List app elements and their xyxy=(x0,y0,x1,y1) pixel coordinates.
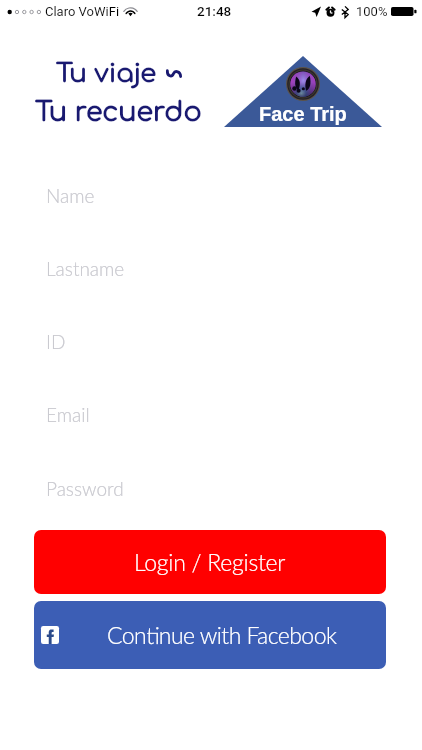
staticText: Continue with Facebook xyxy=(107,621,337,649)
staticText: Email xyxy=(46,403,90,426)
button[interactable]: Lastname xyxy=(0,240,422,296)
button[interactable]: Password xyxy=(0,460,422,516)
button[interactable]: Login / Register xyxy=(34,530,386,594)
staticText: Password xyxy=(46,477,124,500)
staticText: Lastname xyxy=(46,257,125,280)
staticText: Tu viaje xyxy=(56,59,157,88)
staticText: 21:48 xyxy=(197,3,232,19)
staticText: ID xyxy=(46,330,66,353)
button[interactable]: Name xyxy=(0,167,422,223)
staticText: Face Trip xyxy=(259,103,347,125)
button[interactable]: Continue with Facebook xyxy=(34,601,386,669)
staticText: 100% xyxy=(356,4,388,19)
staticText: Tu recuerdo xyxy=(35,97,202,127)
staticText: Name xyxy=(46,184,95,207)
staticText: Login / Register xyxy=(134,548,286,576)
staticText: Claro VoWiFi xyxy=(45,4,120,19)
button[interactable]: Email xyxy=(0,386,422,442)
